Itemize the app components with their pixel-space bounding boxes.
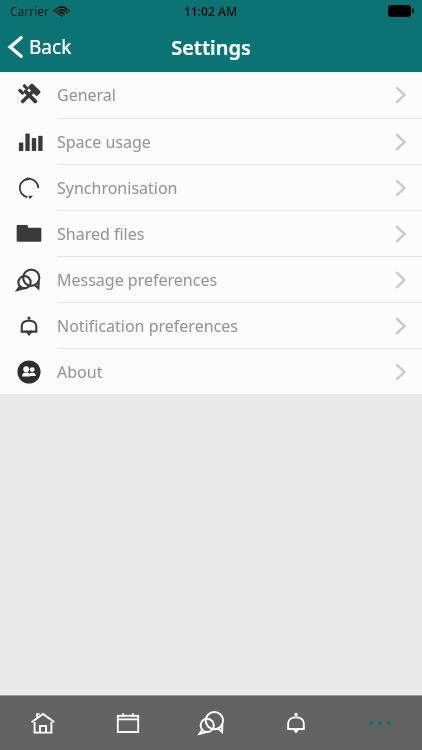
button[interactable]: General	[0, 72, 422, 118]
button[interactable]: Message preferences	[0, 256, 422, 302]
button[interactable]: Notification preferences	[0, 302, 422, 348]
button[interactable]: Back	[0, 22, 84, 72]
button[interactable]: More	[338, 696, 422, 750]
staticText: Shared files	[57, 223, 145, 245]
button[interactable]: Home	[0, 696, 85, 750]
button[interactable]: About	[0, 348, 422, 394]
staticText: Back	[29, 34, 72, 60]
button[interactable]: Synchronisation	[0, 164, 422, 210]
staticText: Space usage	[57, 131, 151, 153]
button[interactable]: Notifications	[254, 696, 338, 750]
button[interactable]: Shared files	[0, 210, 422, 256]
staticText: Message preferences	[57, 269, 218, 291]
staticText: Settings	[171, 34, 251, 61]
staticText: About	[57, 361, 103, 383]
staticText: 11:02 AM	[184, 3, 238, 19]
button[interactable]: Messages	[170, 696, 254, 750]
staticText: General	[57, 84, 116, 106]
button[interactable]: Calendar	[85, 696, 170, 750]
staticText: Synchronisation	[57, 177, 178, 199]
staticText: Carrier	[10, 3, 50, 19]
staticText: Notification preferences	[57, 315, 238, 337]
button[interactable]: Space usage	[0, 118, 422, 164]
